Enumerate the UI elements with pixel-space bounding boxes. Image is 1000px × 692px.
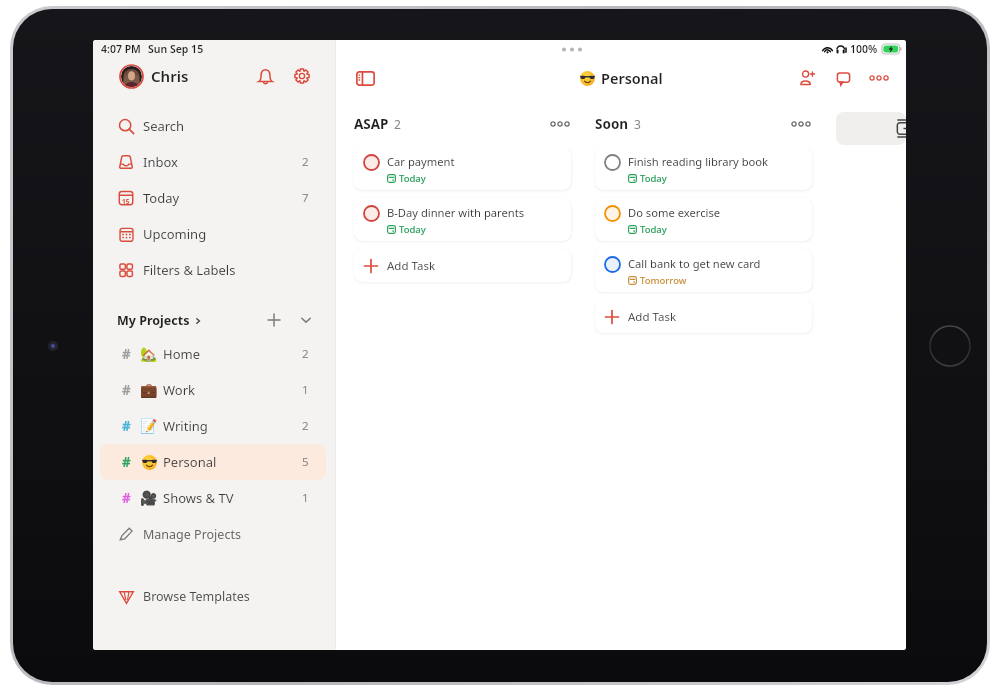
button[interactable]: # bbox=[100, 480, 326, 516]
staticText: B-Day dinner with parents bbox=[387, 205, 525, 220]
button[interactable]: Browse Templates bbox=[93, 578, 335, 614]
staticText: # bbox=[122, 417, 131, 435]
button[interactable]: # bbox=[100, 372, 326, 408]
button[interactable]: Filters & Labels bbox=[93, 252, 335, 288]
staticText: 3 bbox=[634, 116, 641, 132]
button[interactable]: Toggle sidebar bbox=[352, 65, 378, 91]
staticText: Chris bbox=[151, 66, 189, 86]
staticText: # bbox=[122, 453, 131, 471]
staticText: Upcoming bbox=[143, 225, 207, 243]
staticText: 1 bbox=[302, 490, 309, 506]
staticText: Work bbox=[163, 381, 196, 399]
staticText: 📝 bbox=[140, 418, 158, 434]
button[interactable]: Chris bbox=[93, 59, 335, 93]
staticText: Filters & Labels bbox=[143, 261, 236, 279]
button[interactable]: # bbox=[100, 408, 326, 444]
button[interactable]: Manage Projects bbox=[93, 516, 335, 552]
button[interactable]: B-Day dinner with parents bbox=[354, 198, 571, 241]
staticText: 2 bbox=[394, 116, 401, 132]
staticText: 2 bbox=[302, 346, 309, 362]
staticText: Personal bbox=[601, 68, 663, 88]
staticText: Search bbox=[143, 117, 185, 135]
staticText: Shows & TV bbox=[163, 489, 234, 507]
button[interactable]: Add project bbox=[263, 309, 285, 331]
staticText: 100% bbox=[850, 42, 878, 56]
button[interactable]: Call bank to get new card bbox=[595, 249, 812, 292]
staticText: Home bbox=[163, 345, 200, 363]
button[interactable]: Collapse bbox=[295, 309, 317, 331]
button[interactable]: Personal bbox=[580, 68, 663, 88]
button[interactable]: Finish reading library book bbox=[595, 147, 812, 190]
staticText: # bbox=[122, 345, 131, 363]
staticText: Do some exercise bbox=[628, 205, 721, 220]
staticText: 2 bbox=[302, 154, 309, 170]
button[interactable]: Do some exercise bbox=[595, 198, 812, 241]
staticText: Add Task bbox=[628, 309, 677, 325]
button[interactable]: 15 bbox=[93, 180, 335, 216]
button[interactable]: Add Task bbox=[595, 300, 812, 333]
button[interactable]: Add section bbox=[836, 112, 906, 145]
staticText: 1 bbox=[302, 382, 309, 398]
button[interactable]: Comments bbox=[830, 65, 856, 91]
button[interactable]: Section options bbox=[790, 113, 812, 135]
staticText: 15 bbox=[122, 197, 130, 206]
staticText: 5 bbox=[302, 454, 309, 470]
staticText: Today bbox=[399, 172, 426, 185]
button[interactable]: Share project bbox=[794, 65, 820, 91]
staticText: Call bank to get new card bbox=[628, 256, 761, 271]
button[interactable]: Settings bbox=[289, 63, 315, 89]
staticText: Manage Projects bbox=[143, 526, 241, 543]
staticText: Today bbox=[640, 172, 667, 185]
staticText: 🏡 bbox=[140, 346, 158, 362]
staticText: Soon bbox=[595, 115, 629, 133]
staticText: Browse Templates bbox=[143, 588, 250, 605]
staticText: 🎥 bbox=[140, 490, 158, 506]
button[interactable]: Notifications bbox=[252, 63, 278, 89]
button[interactable]: Search bbox=[93, 108, 335, 144]
staticText: Today bbox=[399, 223, 426, 236]
staticText: Tomorrow bbox=[640, 274, 687, 287]
button[interactable]: Section options bbox=[549, 113, 571, 135]
button[interactable]: Car payment bbox=[354, 147, 571, 190]
button[interactable]: My Projects bbox=[117, 312, 202, 329]
staticText: Today bbox=[143, 189, 180, 207]
button[interactable]: # bbox=[100, 444, 326, 480]
staticText: Inbox bbox=[143, 153, 178, 171]
button[interactable]: Inbox bbox=[93, 144, 335, 180]
staticText: 💼 bbox=[140, 382, 158, 398]
button[interactable]: Upcoming bbox=[93, 216, 335, 252]
staticText: Add Task bbox=[387, 258, 436, 274]
staticText: ASAP bbox=[354, 115, 389, 133]
staticText: Sun Sep 15 bbox=[148, 42, 204, 56]
staticText: Finish reading library book bbox=[628, 154, 769, 169]
staticText: 4:07 PM bbox=[101, 42, 141, 56]
staticText: # bbox=[122, 489, 131, 507]
staticText: # bbox=[122, 381, 131, 399]
button[interactable]: # bbox=[100, 336, 326, 372]
button[interactable]: More options bbox=[866, 65, 892, 91]
staticText: Car payment bbox=[387, 154, 455, 169]
staticText: 7 bbox=[302, 190, 309, 206]
staticText: Today bbox=[640, 223, 667, 236]
staticText: My Projects bbox=[117, 312, 190, 329]
staticText: Writing bbox=[163, 417, 208, 435]
staticText: 2 bbox=[302, 418, 309, 434]
button[interactable]: Add Task bbox=[354, 249, 571, 282]
staticText: Personal bbox=[163, 453, 217, 471]
